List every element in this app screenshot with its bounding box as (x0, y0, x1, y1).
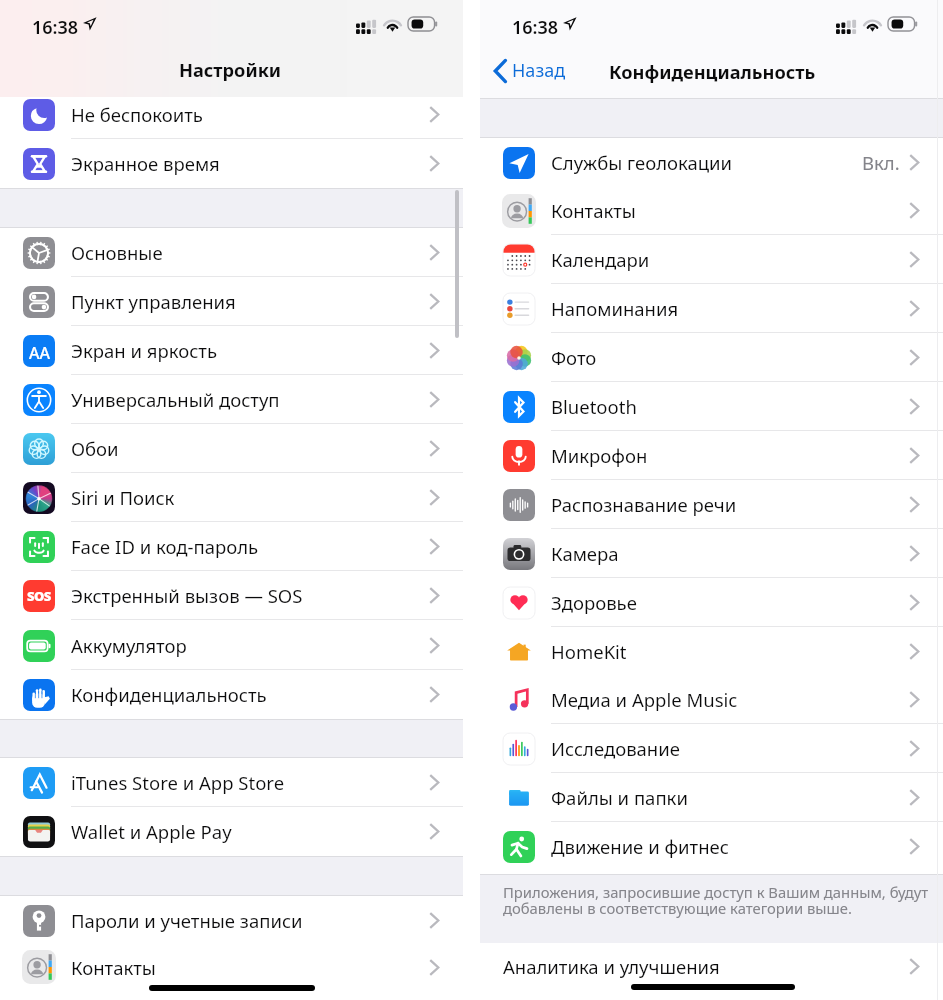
button[interactable]: Движение и фитнес (480, 822, 943, 871)
staticText: Пункт управления (71, 289, 236, 314)
button[interactable]: Файлы и папки (480, 773, 943, 822)
staticText: Аккумулятор (71, 633, 187, 658)
button[interactable]: Микрофон (480, 431, 943, 480)
button[interactable]: Не беспокоить (0, 90, 463, 139)
button[interactable]: Исследование (480, 724, 943, 773)
staticText: Движение и фитнес (551, 834, 729, 859)
staticText: Микрофон (551, 443, 648, 468)
staticText: HomeKit (551, 639, 627, 664)
button[interactable]: Wallet и Apple Pay (0, 807, 463, 856)
staticText: Экран и яркость (71, 338, 217, 363)
button[interactable]: Распознавание речи (480, 480, 943, 529)
button[interactable]: Универсальный доступ (0, 375, 463, 424)
staticText: SOS (27, 587, 51, 605)
staticText: Файлы и папки (551, 785, 688, 810)
staticText: Пароли и учетные записи (71, 908, 303, 933)
button[interactable]: Службы геолокации (480, 138, 943, 187)
staticText: Здоровье (551, 590, 637, 615)
staticText: Bluetooth (551, 394, 637, 419)
button[interactable]: Основные (0, 228, 463, 277)
staticText: Контакты (551, 198, 636, 223)
staticText: Настройки (179, 58, 282, 83)
staticText: Вкл. (862, 150, 900, 175)
button[interactable]: Конфиденциальность (0, 670, 463, 719)
button[interactable]: Обои (0, 424, 463, 473)
staticText: Медиа и Apple Music (551, 687, 738, 712)
button[interactable]: Контакты (480, 186, 943, 235)
staticText: Назад (512, 58, 566, 83)
staticText: Универсальный доступ (71, 387, 280, 412)
button[interactable]: Siri и Поиск (0, 473, 463, 522)
staticText: Исследование (551, 736, 680, 761)
button[interactable]: Пункт управления (0, 277, 463, 326)
staticText: Конфиденциальность (609, 60, 816, 85)
staticText: Контакты (71, 955, 156, 980)
button[interactable]: Напоминания (480, 284, 943, 333)
staticText: Экстренный вызов — SOS (71, 583, 303, 608)
staticText: Обои (71, 436, 119, 461)
button[interactable]: iTunes Store и App Store (0, 758, 463, 807)
button[interactable]: Назад (494, 58, 566, 83)
staticText: iTunes Store и App Store (71, 770, 285, 795)
staticText: Не беспокоить (71, 102, 203, 127)
button[interactable]: Экранное время (0, 139, 463, 188)
button[interactable]: HomeKit (480, 627, 943, 676)
staticText: 16:38 (32, 15, 79, 40)
button[interactable]: Календари (480, 235, 943, 284)
staticText: Распознавание речи (551, 492, 737, 517)
staticText: Конфиденциальность (71, 682, 267, 707)
staticText: Напоминания (551, 296, 679, 321)
button[interactable]: AA (0, 326, 463, 375)
button[interactable]: Bluetooth (480, 382, 943, 431)
button[interactable]: Аналитика и улучшения (480, 943, 943, 990)
staticText: Siri и Поиск (71, 485, 175, 510)
staticText: Приложения, запросившие доступ к Вашим д… (503, 882, 939, 919)
staticText: Экранное время (71, 151, 220, 176)
staticText: Face ID и код-пароль (71, 534, 259, 559)
button[interactable]: Face ID и код-пароль (0, 522, 463, 571)
staticText: Службы геолокации (551, 150, 733, 175)
staticText: Основные (71, 240, 163, 265)
button[interactable]: Медиа и Apple Music (480, 675, 943, 724)
staticText: Камера (551, 541, 619, 566)
staticText: AA (29, 342, 50, 364)
button[interactable]: Фото (480, 333, 943, 382)
button[interactable]: Камера (480, 529, 943, 578)
staticText: Календари (551, 247, 650, 272)
button[interactable]: Аккумулятор (0, 621, 463, 670)
staticText: Фото (551, 345, 597, 370)
button[interactable]: Пароли и учетные записи (0, 896, 463, 945)
button[interactable]: Контакты (0, 944, 463, 990)
staticText: Wallet и Apple Pay (71, 819, 232, 844)
button[interactable]: SOS (0, 571, 463, 620)
button[interactable]: Здоровье (480, 578, 943, 627)
staticText: 16:38 (512, 15, 559, 40)
staticText: Аналитика и улучшения (503, 954, 720, 979)
